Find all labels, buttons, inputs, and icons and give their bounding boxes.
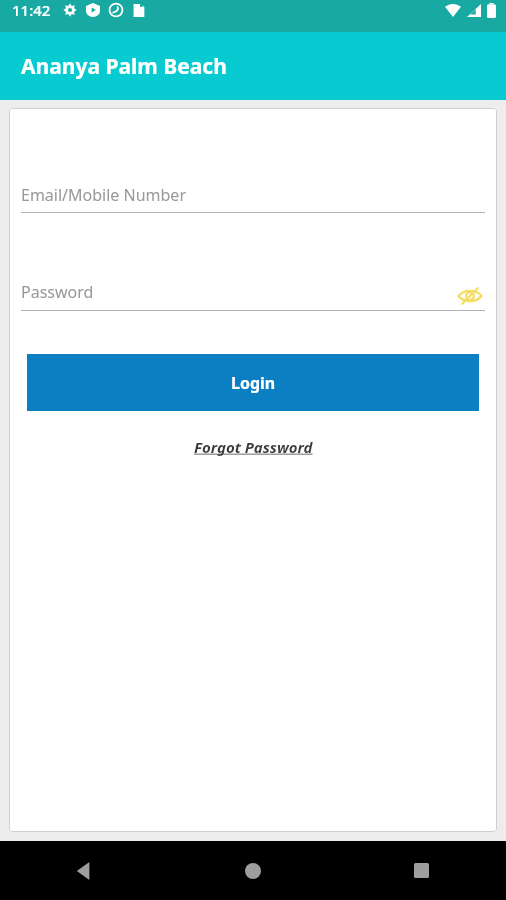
staticText: Password [21, 281, 94, 303]
staticText: Ananya Palm Beach [21, 52, 227, 81]
button[interactable]: Login [27, 354, 479, 411]
button[interactable]: Email/Mobile Number [21, 184, 485, 213]
button[interactable]: Password [21, 281, 485, 318]
staticText: Forgot Password [194, 437, 313, 457]
staticText: 11:42 [12, 0, 51, 20]
button[interactable]: Back [0, 841, 168, 900]
button[interactable]: Show password [455, 281, 485, 311]
staticText: Email/Mobile Number [21, 184, 186, 206]
button[interactable]: Home [168, 841, 337, 900]
button[interactable]: Recent apps [337, 841, 506, 900]
staticText: Login [231, 372, 276, 394]
button[interactable]: Forgot Password [186, 435, 321, 459]
